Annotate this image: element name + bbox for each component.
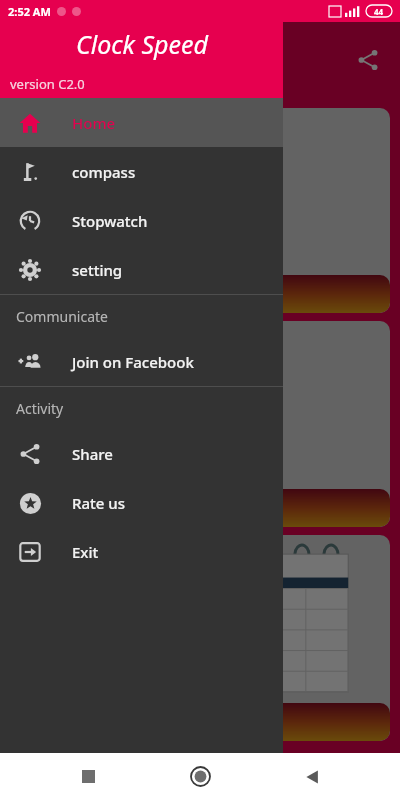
staticText: 44 — [374, 6, 384, 17]
staticText: Communicate — [16, 307, 108, 326]
button[interactable]: setting — [0, 245, 283, 294]
button[interactable]: Share — [348, 40, 388, 80]
staticText: version C2.0 — [10, 75, 85, 93]
button[interactable]: Exit — [0, 527, 283, 576]
staticText: Clock Speed — [134, 43, 266, 77]
button[interactable]: Share — [0, 429, 283, 478]
button[interactable]: Stopwatch — [0, 196, 283, 245]
staticText: setting — [72, 260, 123, 280]
button[interactable]: Home — [176, 753, 224, 800]
button[interactable]: Join on Facebook — [0, 337, 283, 386]
staticText: Share — [72, 444, 113, 464]
staticText: Clock Speed — [76, 27, 208, 61]
button[interactable]: ALARM — [10, 108, 390, 313]
button[interactable]: TIMER — [10, 321, 390, 527]
button[interactable]: Back — [288, 753, 336, 800]
button[interactable]: Home — [0, 98, 283, 147]
button[interactable]: Recents — [64, 753, 112, 800]
staticText: Home — [72, 113, 116, 133]
staticText: Stopwatch — [72, 211, 148, 231]
staticText: Exit — [72, 542, 99, 562]
button[interactable]: compass — [0, 147, 283, 196]
staticText: compass — [72, 162, 136, 182]
staticText: ALARM — [173, 284, 227, 304]
staticText: Activity — [16, 399, 64, 418]
staticText: 2:52 AM — [8, 4, 51, 19]
button[interactable]: CALENDAR — [10, 535, 390, 741]
button[interactable]: Rate us — [0, 478, 283, 527]
staticText: Join on Facebook — [72, 352, 194, 372]
staticText: Rate us — [72, 493, 126, 513]
